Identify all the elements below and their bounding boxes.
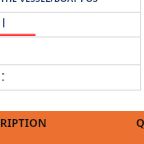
staticText: RIPTION	[0, 115, 47, 130]
staticText: Q	[136, 115, 144, 130]
button[interactable]: RIPTION	[0, 111, 144, 144]
button[interactable]	[0, 65, 140, 90]
button[interactable]	[0, 12, 140, 36]
staticText: THE VESSEL/BOAT POS	[0, 0, 98, 4]
button[interactable]	[0, 37, 140, 64]
